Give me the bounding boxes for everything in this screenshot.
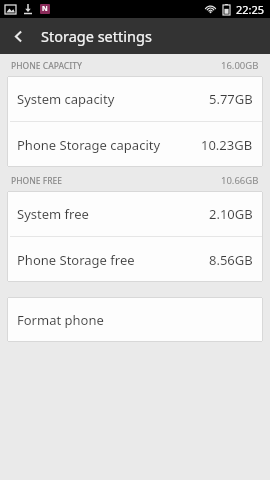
staticText: Format phone xyxy=(17,311,104,329)
staticText: PHONE FREE xyxy=(11,175,63,187)
button[interactable]: Phone Storage free xyxy=(7,237,263,282)
staticText: PHONE CAPACITY xyxy=(11,60,83,72)
staticText: N xyxy=(42,4,48,14)
button[interactable]: Back xyxy=(0,18,36,54)
staticText: System capacity xyxy=(17,90,115,108)
staticText: 2.10GB xyxy=(209,205,253,223)
staticText: System free xyxy=(17,205,89,223)
button[interactable]: System free xyxy=(7,191,263,236)
button[interactable]: System capacity xyxy=(7,76,263,121)
staticText: Phone Storage free xyxy=(17,251,135,269)
button[interactable]: Phone Storage capacity xyxy=(7,122,263,167)
button[interactable]: Format phone xyxy=(7,297,263,342)
staticText: Phone Storage capacity xyxy=(17,136,161,154)
staticText: 10.23GB xyxy=(201,136,253,154)
staticText: 8.56GB xyxy=(209,251,253,269)
staticText: Storage settings xyxy=(41,26,152,46)
staticText: 22:25 xyxy=(236,2,265,17)
staticText: 16.00GB xyxy=(221,59,259,72)
staticText: 10.66GB xyxy=(221,174,259,187)
staticText: 5.77GB xyxy=(209,90,253,108)
